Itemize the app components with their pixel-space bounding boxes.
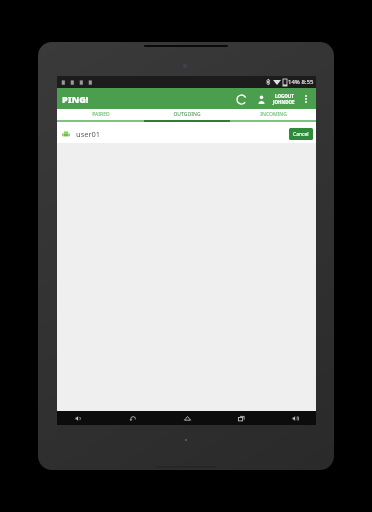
button[interactable]: Account	[252, 90, 270, 108]
button[interactable]: Refresh	[232, 90, 250, 108]
button[interactable]: INCOMING	[230, 109, 316, 120]
button[interactable]: Volume up	[284, 411, 306, 425]
button[interactable]: Recent apps	[230, 411, 252, 425]
staticText: INCOMING	[260, 111, 287, 118]
button[interactable]: Back	[121, 411, 143, 425]
button[interactable]: user01	[57, 124, 316, 143]
button[interactable]: LOGOUT	[271, 93, 297, 105]
button[interactable]: Cancel	[289, 128, 313, 140]
button[interactable]: OUTGOING	[144, 109, 230, 120]
button[interactable]: More options	[298, 91, 314, 107]
button[interactable]: Home	[176, 411, 198, 425]
staticText: 14% 8:55	[288, 78, 314, 86]
staticText: PAIRED	[92, 111, 110, 118]
staticText: JOHNDOE	[273, 99, 295, 105]
staticText: OUTGOING	[173, 111, 201, 118]
staticText: Cancel	[293, 131, 309, 138]
staticText: PING!	[62, 93, 89, 105]
staticText: LOGOUT	[275, 93, 294, 99]
button[interactable]: PAIRED	[57, 109, 144, 120]
staticText: user01	[76, 129, 101, 139]
button[interactable]: Volume down	[67, 411, 89, 425]
